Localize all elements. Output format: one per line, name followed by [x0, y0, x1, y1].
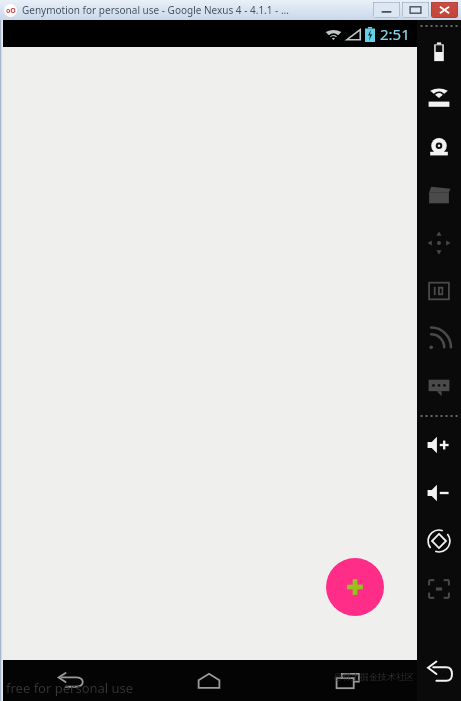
button[interactable]: Maximize	[402, 2, 429, 18]
button[interactable]: Rotate	[417, 517, 461, 565]
staticText: free for personal use	[6, 679, 134, 697]
button[interactable]: Home	[139, 660, 278, 701]
button[interactable]: Close	[431, 2, 458, 18]
button[interactable]: Add	[326, 558, 384, 616]
button[interactable]: Messaging	[417, 363, 461, 411]
button[interactable]: Battery	[417, 29, 461, 75]
staticText: 2:51	[380, 24, 410, 44]
button[interactable]: Identifiers	[417, 267, 461, 315]
staticText: Genymotion for personal use - Google Nex…	[22, 3, 289, 17]
button[interactable]: Network	[417, 315, 461, 363]
button[interactable]: Recent apps	[278, 660, 417, 701]
button[interactable]: D-pad	[417, 219, 461, 267]
button[interactable]: Volume up	[417, 421, 461, 469]
button[interactable]: Back	[0, 660, 139, 701]
button[interactable]: Video	[417, 171, 461, 219]
button[interactable]: Full screen	[417, 565, 461, 613]
button[interactable]: Volume down	[417, 469, 461, 517]
button[interactable]: Back	[417, 649, 461, 697]
button[interactable]: Camera	[417, 123, 461, 171]
button[interactable]: GPS	[417, 75, 461, 123]
staticText: oO	[6, 6, 16, 16]
staticText: @稀土掘金技术社区	[334, 670, 415, 682]
button[interactable]: Minimize	[373, 2, 400, 18]
